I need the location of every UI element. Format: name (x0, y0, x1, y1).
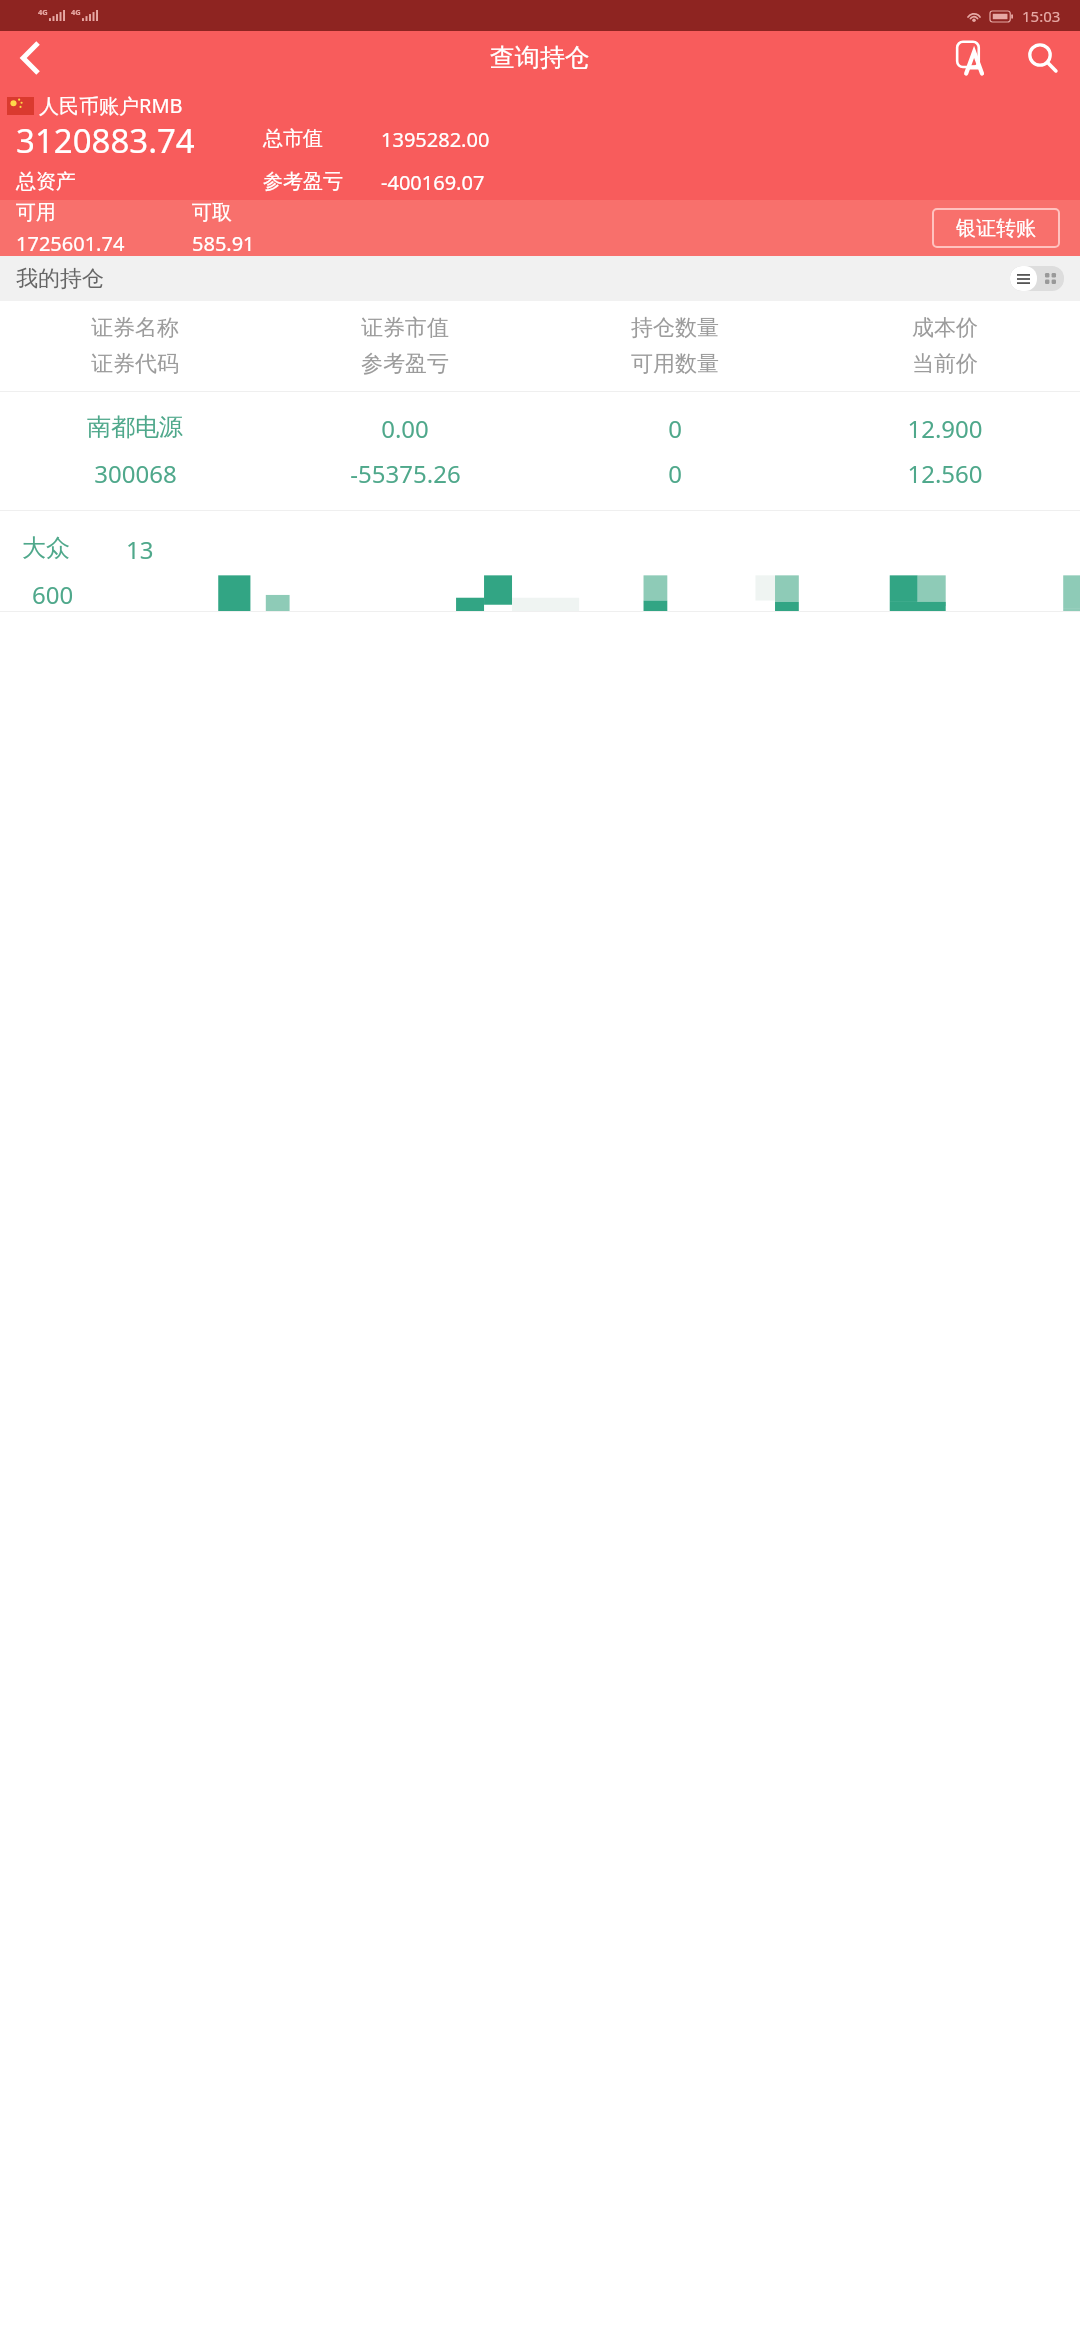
staticText: 证券名称 (91, 314, 179, 342)
staticText: 4G (38, 7, 48, 17)
staticText: 600 (32, 578, 74, 611)
staticText: 证券市值 (361, 314, 449, 342)
button[interactable]: 大众 (0, 511, 1080, 611)
staticText: 参考盈亏 (361, 350, 449, 378)
staticText: 可用数量 (631, 350, 719, 378)
staticText: 参考盈亏 (263, 169, 381, 194)
staticText: 查询持仓 (490, 42, 590, 73)
button[interactable]: 南都电源 (0, 392, 1080, 510)
staticText: 银证转账 (956, 216, 1036, 241)
staticText: 4G (71, 7, 81, 17)
staticText: 1395282.00 (381, 126, 490, 153)
staticText: 大众 (22, 533, 70, 563)
staticText: 300068 (94, 457, 177, 490)
staticText: 0 (668, 457, 682, 490)
staticText: -400169.07 (381, 169, 485, 196)
staticText: 持仓数量 (631, 314, 719, 342)
staticText: 可取 (192, 200, 232, 225)
button[interactable]: Font size (948, 33, 998, 83)
staticText: 总市值 (263, 126, 381, 151)
staticText: 人民币账户RMB (39, 92, 183, 119)
button[interactable]: Back (4, 32, 56, 84)
button[interactable]: Grid view (1037, 266, 1064, 291)
staticText: 总资产 (16, 169, 76, 194)
staticText: -55375.26 (350, 457, 461, 490)
staticText: 13 (126, 533, 154, 566)
staticText: 可用 (16, 200, 56, 225)
button[interactable]: List view (1010, 266, 1037, 291)
staticText: 585.91 (192, 230, 255, 256)
staticText: 南都电源 (87, 412, 183, 442)
staticText: 我的持仓 (16, 265, 104, 293)
staticText: 证券代码 (91, 350, 179, 378)
staticText: 0 (668, 412, 682, 445)
staticText: 3120883.74 (16, 118, 195, 163)
button[interactable]: Search (1018, 33, 1068, 83)
staticText: 0.00 (381, 412, 429, 445)
staticText: 成本价 (912, 314, 978, 342)
staticText: 1725601.74 (16, 230, 125, 256)
staticText: 12.900 (907, 412, 983, 445)
staticText: 12.560 (907, 457, 983, 490)
button[interactable]: 银证转账 (932, 208, 1060, 248)
staticText: 15:03 (1022, 6, 1061, 26)
staticText: 当前价 (912, 350, 978, 378)
